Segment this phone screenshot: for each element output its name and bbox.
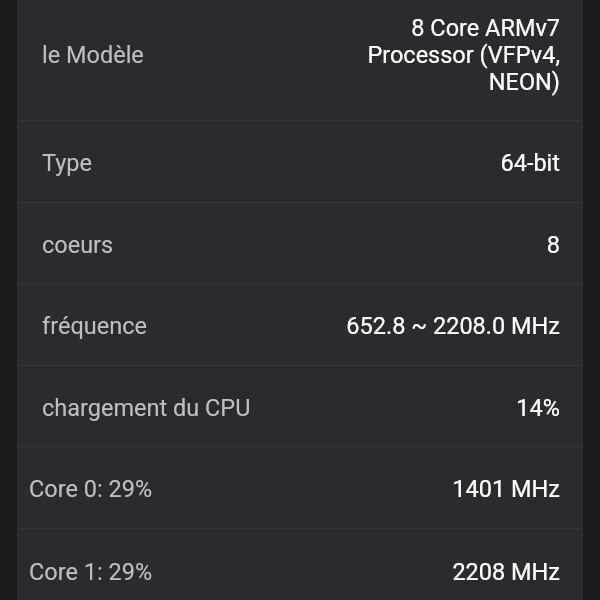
- staticText: le Modèle: [42, 41, 144, 69]
- staticText: Type: [42, 149, 92, 177]
- staticText: 1401 MHz: [163, 475, 560, 503]
- staticText: 2208 MHz: [163, 558, 560, 586]
- staticText: 652.8 ~ 2208.0 MHz: [157, 312, 560, 340]
- staticText: chargement du CPU: [42, 394, 251, 422]
- staticText: 64-bit: [102, 149, 560, 177]
- button[interactable]: coeurs: [17, 203, 583, 284]
- button[interactable]: Core 1: 29%: [17, 529, 583, 600]
- button[interactable]: Core 0: 29%: [17, 447, 583, 529]
- button[interactable]: le Modèle: [17, 0, 583, 121]
- staticText: 8 Core ARMv7 Processor (VFPv4, NEON): [154, 14, 560, 95]
- staticText: 8: [124, 231, 560, 259]
- staticText: 14%: [261, 394, 560, 422]
- staticText: Core 0: 29%: [29, 475, 153, 503]
- staticText: coeurs: [42, 231, 114, 259]
- staticText: Core 1: 29%: [29, 558, 153, 586]
- button[interactable]: fréquence: [17, 284, 583, 366]
- button[interactable]: Type: [17, 121, 583, 203]
- staticText: fréquence: [42, 312, 147, 340]
- button[interactable]: chargement du CPU: [17, 366, 583, 447]
